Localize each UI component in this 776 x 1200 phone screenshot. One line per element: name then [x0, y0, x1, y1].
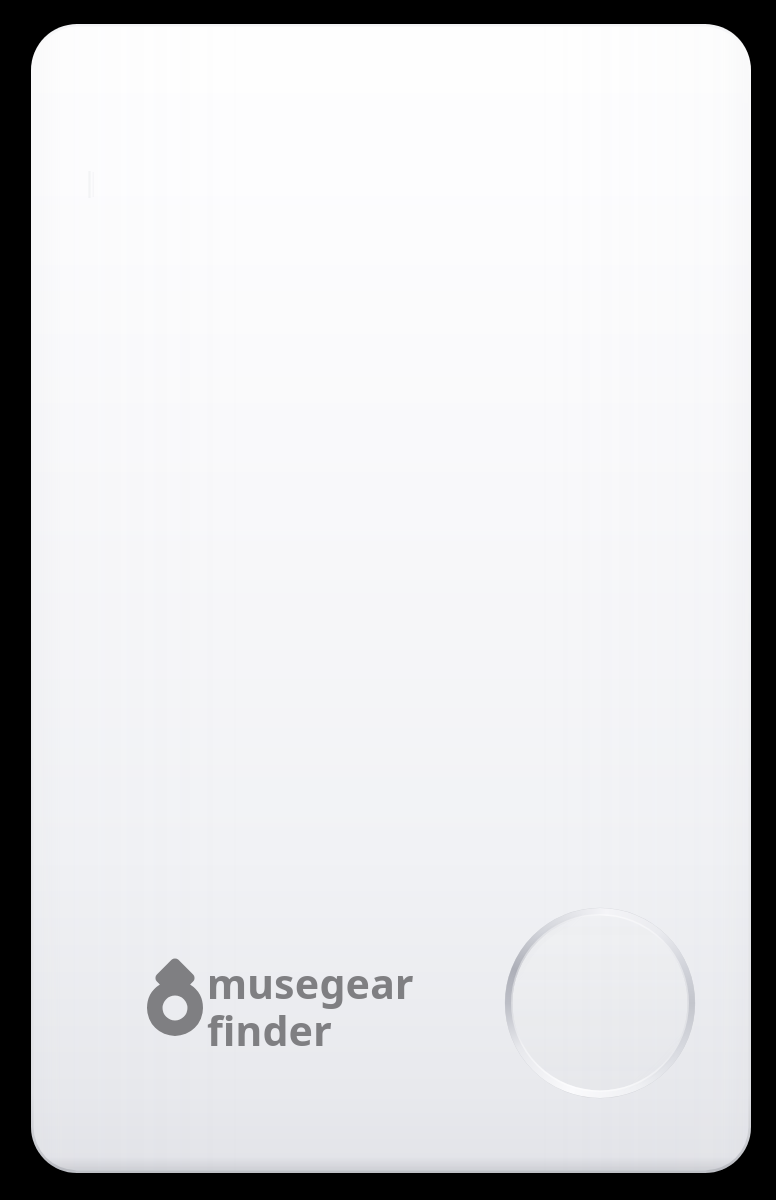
button[interactable]: musegear finder: [147, 957, 437, 1043]
staticText: finder: [207, 1002, 332, 1058]
staticText: musegear: [207, 955, 414, 1011]
button[interactable]: Finder button: [499, 902, 701, 1104]
